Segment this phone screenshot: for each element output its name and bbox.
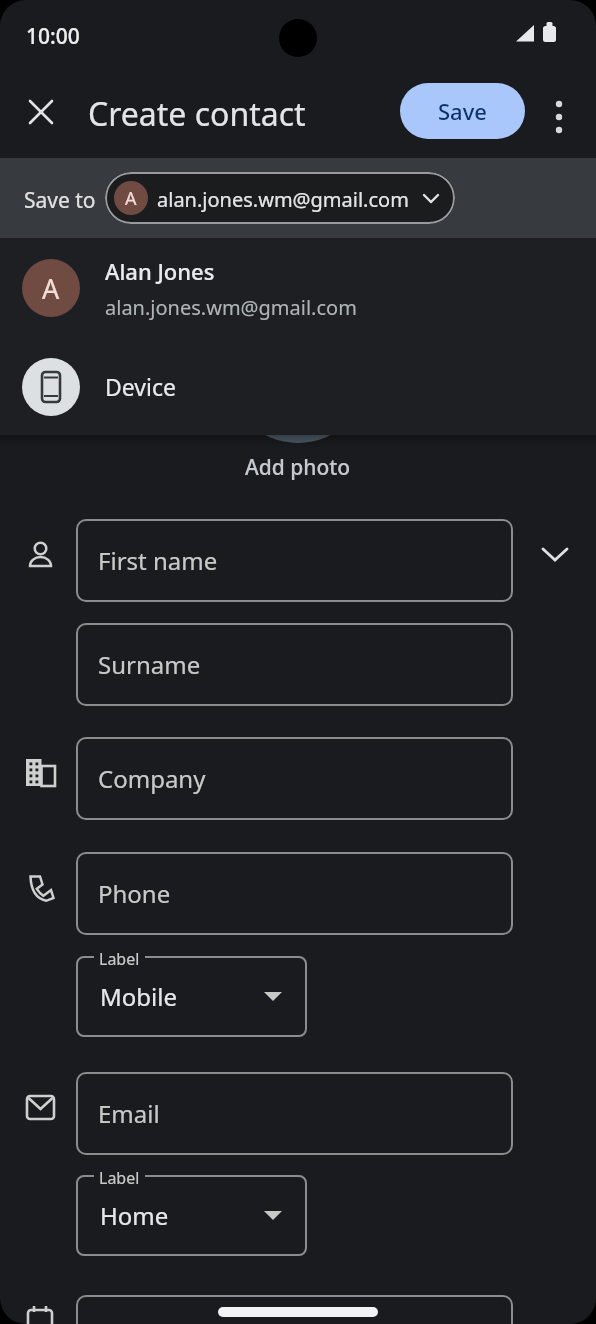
staticText: Label bbox=[99, 1167, 140, 1189]
staticText: Surname bbox=[98, 648, 201, 681]
button[interactable]: Email bbox=[76, 1072, 513, 1155]
staticText: Alan Jones bbox=[105, 256, 215, 286]
staticText: Device bbox=[105, 371, 176, 402]
staticText: Email bbox=[98, 1097, 160, 1130]
staticText: alan.jones.wm@gmail.com bbox=[157, 186, 409, 213]
button[interactable]: Save bbox=[400, 83, 525, 139]
staticText: Label bbox=[99, 948, 140, 970]
button[interactable]: Company bbox=[76, 737, 513, 820]
button[interactable]: Home bbox=[76, 1175, 307, 1256]
staticText: First name bbox=[98, 544, 218, 577]
button[interactable]: First name bbox=[76, 519, 513, 602]
button[interactable]: Device bbox=[0, 338, 596, 435]
button[interactable]: Phone bbox=[76, 852, 513, 935]
button[interactable]: A bbox=[105, 172, 455, 224]
staticText: Phone bbox=[98, 877, 171, 910]
button[interactable]: A bbox=[0, 238, 596, 338]
button[interactable] bbox=[536, 88, 582, 134]
button[interactable]: Surname bbox=[76, 623, 513, 706]
staticText: Mobile bbox=[100, 980, 177, 1013]
staticText: Company bbox=[98, 762, 206, 795]
staticText: Home bbox=[100, 1199, 169, 1232]
staticText: alan.jones.wm@gmail.com bbox=[105, 294, 357, 321]
staticText: Create contact bbox=[88, 92, 306, 136]
button[interactable] bbox=[76, 1295, 513, 1324]
button[interactable]: Mobile bbox=[76, 956, 307, 1037]
staticText: A bbox=[42, 270, 60, 307]
button[interactable] bbox=[532, 531, 578, 577]
staticText: Add photo bbox=[245, 453, 351, 482]
staticText: Save bbox=[438, 96, 487, 126]
button[interactable] bbox=[18, 89, 64, 135]
button[interactable]: Add photo bbox=[0, 450, 596, 484]
staticText: Save to bbox=[24, 186, 96, 215]
staticText: A bbox=[125, 186, 137, 211]
staticText: 10:00 bbox=[26, 22, 80, 51]
